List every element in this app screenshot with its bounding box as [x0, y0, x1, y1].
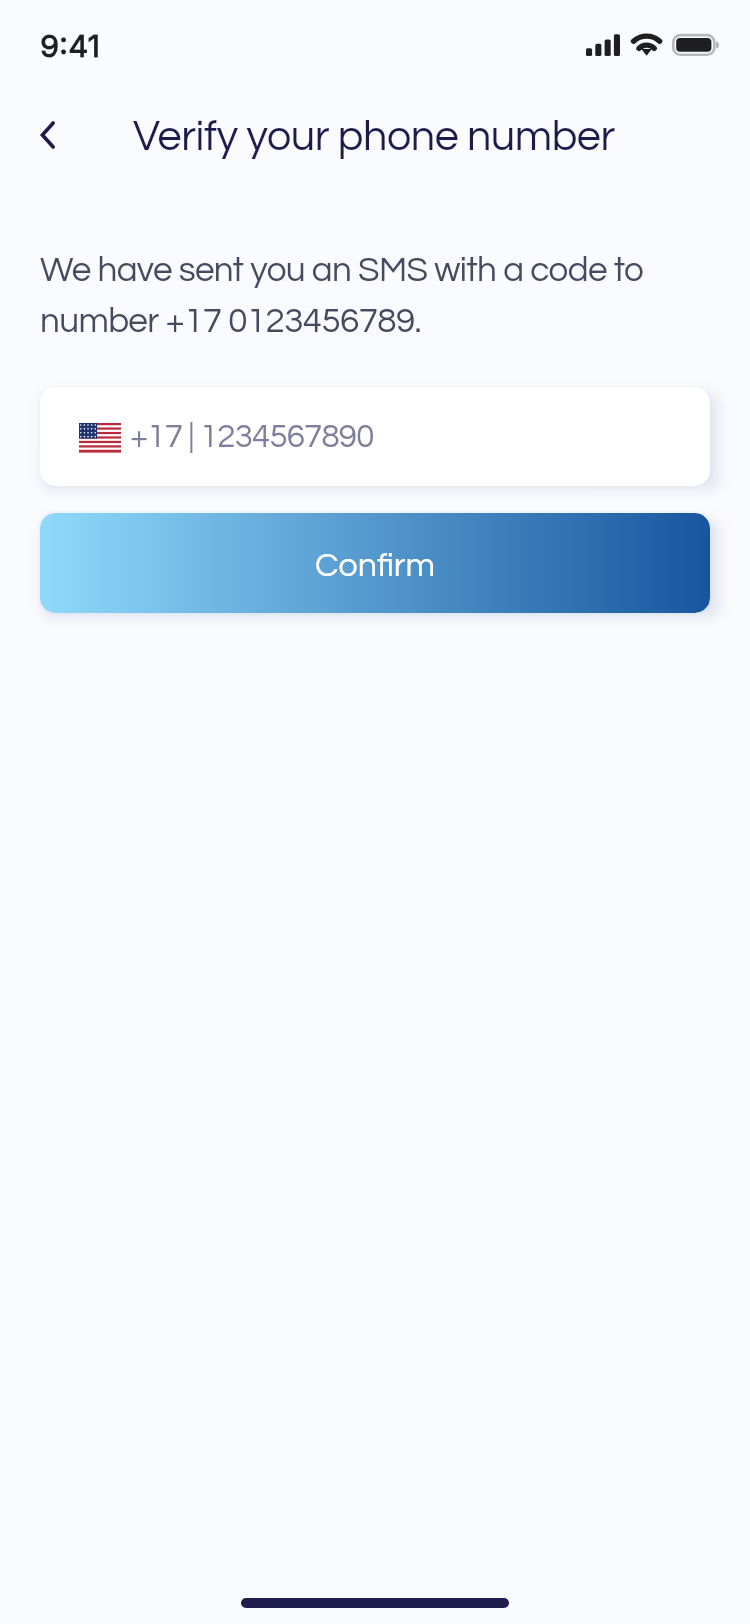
staticText: Verify your phone number: [133, 115, 615, 159]
button[interactable]: +17 | 1234567890: [40, 387, 710, 486]
staticText: 9:41: [40, 27, 101, 65]
button[interactable]: Confirm: [40, 513, 710, 613]
staticText: We have sent you an SMS with a code to n…: [40, 252, 680, 340]
staticText: +17 | 1234567890: [130, 420, 374, 454]
staticText: Confirm: [315, 548, 435, 583]
button[interactable]: Back: [25, 111, 73, 159]
